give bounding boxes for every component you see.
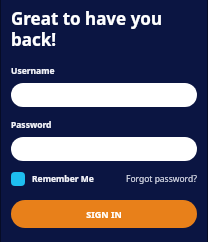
- other: Remember Me checkbox: [11, 172, 25, 186]
- staticText: Remember Me: [32, 173, 94, 185]
- button[interactable]: [11, 83, 197, 107]
- staticText: Password: [11, 119, 52, 131]
- button[interactable]: Forgot password?: [126, 173, 197, 185]
- button[interactable]: Remember Me checkbox: [11, 172, 94, 186]
- button[interactable]: SIGN IN: [11, 200, 197, 228]
- staticText: SIGN IN: [86, 208, 122, 220]
- staticText: Great to have you back!: [11, 7, 163, 51]
- button[interactable]: [11, 137, 197, 161]
- staticText: Username: [11, 65, 55, 77]
